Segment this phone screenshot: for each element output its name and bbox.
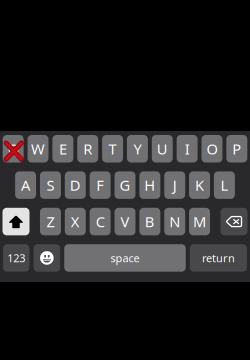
staticText: W [31, 139, 45, 158]
button[interactable]: Delete [220, 208, 247, 235]
button[interactable]: S [40, 171, 61, 199]
staticText: Z [46, 212, 54, 231]
staticText: 123 [7, 250, 25, 265]
staticText: L [220, 175, 228, 195]
staticText: B [145, 212, 155, 231]
button[interactable]: 123 [3, 244, 29, 272]
staticText: P [232, 139, 241, 158]
staticText: D [70, 175, 81, 195]
button[interactable]: Q [3, 135, 24, 162]
button[interactable]: X [65, 208, 86, 235]
staticText: H [144, 175, 155, 195]
button[interactable]: Z [40, 208, 61, 235]
staticText: T [109, 139, 117, 158]
button[interactable]: W [28, 135, 48, 162]
staticText: R [83, 139, 92, 158]
staticText: K [195, 175, 204, 195]
staticText: G [119, 175, 130, 195]
staticText: V [120, 212, 129, 231]
button[interactable]: P [226, 135, 247, 162]
staticText: M [193, 212, 206, 231]
staticText: space [110, 250, 139, 265]
button[interactable]: N [164, 208, 185, 235]
button[interactable]: Y [127, 135, 148, 162]
button[interactable]: Shift [2, 208, 29, 235]
staticText: O [206, 139, 217, 158]
button[interactable]: I [177, 135, 198, 162]
button[interactable]: T [102, 135, 123, 162]
staticText: Y [133, 139, 141, 158]
staticText: N [169, 212, 180, 231]
button[interactable]: K [189, 171, 210, 199]
button[interactable]: F [90, 171, 111, 199]
button[interactable]: G [114, 171, 135, 199]
button[interactable]: V [114, 208, 135, 235]
button[interactable]: E [52, 135, 73, 162]
button[interactable]: space [64, 244, 186, 272]
staticText: F [96, 175, 104, 195]
staticText: A [21, 175, 30, 195]
button[interactable]: B [139, 208, 160, 235]
button[interactable]: U [152, 135, 173, 162]
staticText: J [173, 175, 177, 195]
staticText: I [185, 139, 190, 158]
staticText: E [59, 139, 67, 158]
staticText: Q [8, 139, 19, 158]
button[interactable]: H [139, 171, 160, 199]
button[interactable]: A [15, 171, 36, 199]
button[interactable]: D [65, 171, 86, 199]
staticText: U [157, 139, 168, 158]
staticText: X [71, 212, 80, 231]
staticText: C [96, 212, 105, 231]
staticText: return [202, 250, 235, 265]
button[interactable]: L [214, 171, 235, 199]
button[interactable]: return [190, 244, 247, 272]
button[interactable]: J [164, 171, 185, 199]
button[interactable]: Emoji [33, 244, 60, 272]
button[interactable]: C [90, 208, 111, 235]
button[interactable]: O [201, 135, 222, 162]
staticText: S [46, 175, 54, 195]
button[interactable]: M [189, 208, 210, 235]
button[interactable]: R [77, 135, 98, 162]
